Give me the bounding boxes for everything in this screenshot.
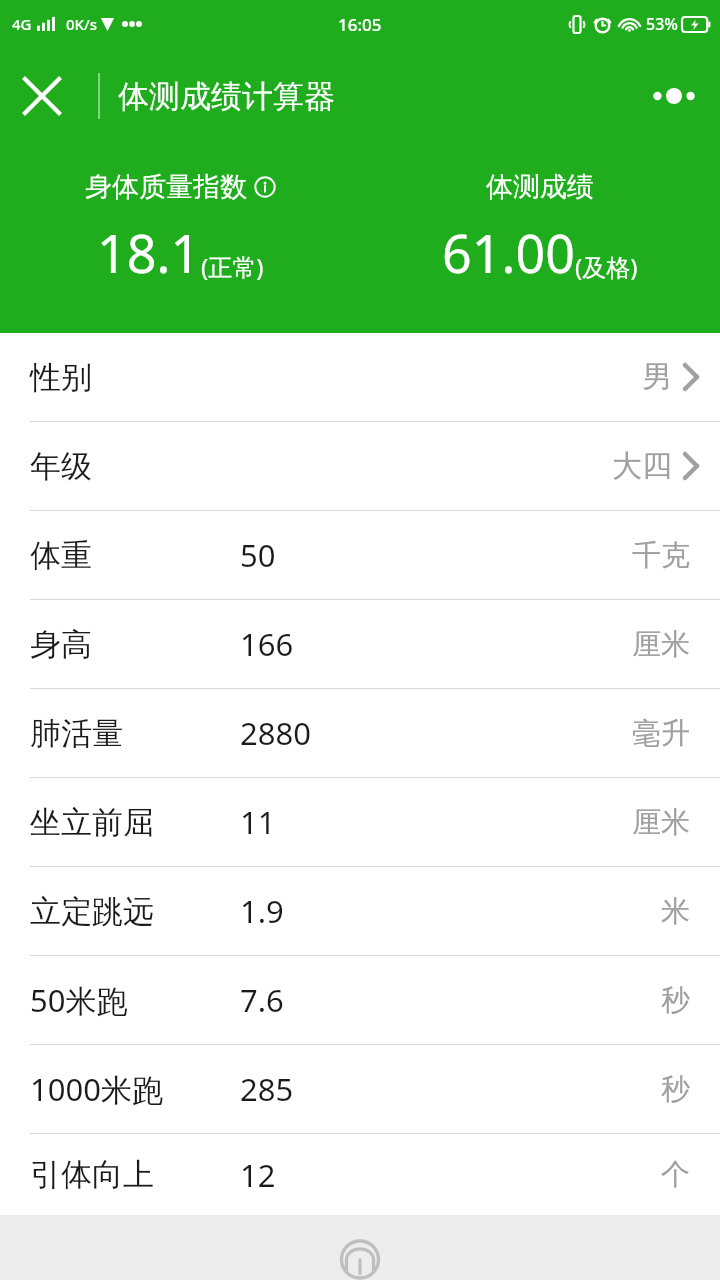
- staticText: 18.1: [97, 217, 201, 288]
- staticText: (及格): [575, 250, 638, 283]
- staticText: 米: [661, 893, 690, 930]
- staticText: 0K/s: [66, 14, 98, 34]
- staticText: 50: [240, 534, 276, 576]
- staticText: 285: [240, 1068, 294, 1110]
- staticText: 4G: [12, 14, 32, 34]
- staticText: 男: [642, 358, 672, 396]
- button[interactable]: 年级: [0, 422, 720, 510]
- staticText: 千克: [632, 537, 690, 574]
- staticText: 体测成绩计算器: [118, 77, 335, 116]
- staticText: 体测成绩: [486, 170, 594, 204]
- staticText: 引体向上: [30, 1155, 154, 1194]
- staticText: 1.9: [240, 890, 284, 932]
- staticText: 12: [240, 1154, 276, 1196]
- staticText: 11: [240, 801, 276, 843]
- staticText: 1000米跑: [30, 1068, 163, 1110]
- button[interactable]: 立定跳远: [0, 867, 720, 955]
- staticText: 2880: [240, 712, 311, 754]
- staticText: 16:05: [338, 13, 382, 36]
- button[interactable]: 坐立前屈: [0, 778, 720, 866]
- staticText: 性别: [30, 358, 92, 397]
- button[interactable]: 性别: [0, 333, 720, 421]
- staticText: 秒: [661, 982, 690, 1019]
- staticText: (正常): [201, 250, 264, 283]
- button[interactable]: 更多: [646, 68, 702, 124]
- staticText: 身体质量指数: [85, 170, 247, 204]
- button[interactable]: 身高: [0, 600, 720, 688]
- staticText: 7.6: [240, 979, 284, 1021]
- staticText: 身高: [30, 625, 92, 664]
- button[interactable]: 50米跑: [0, 956, 720, 1044]
- button[interactable]: 1000米跑: [0, 1045, 720, 1133]
- staticText: 50米跑: [30, 979, 128, 1021]
- staticText: 毫升: [632, 715, 690, 752]
- staticText: 166: [240, 623, 294, 665]
- staticText: 厘米: [632, 626, 690, 663]
- button[interactable]: 引体向上: [0, 1134, 720, 1215]
- staticText: 61.00: [442, 217, 575, 288]
- button[interactable]: 关闭: [14, 68, 70, 124]
- staticText: 立定跳远: [30, 892, 154, 931]
- button[interactable]: 肺活量: [0, 689, 720, 777]
- staticText: 坐立前屈: [30, 803, 154, 842]
- staticText: 年级: [30, 447, 92, 486]
- staticText: 秒: [661, 1071, 690, 1108]
- staticText: 个: [661, 1156, 690, 1193]
- staticText: 体重: [30, 536, 92, 575]
- staticText: 大四: [612, 447, 672, 485]
- staticText: 肺活量: [30, 714, 123, 753]
- staticText: 53%: [646, 13, 678, 35]
- button[interactable]: 体重: [0, 511, 720, 599]
- staticText: 厘米: [632, 804, 690, 841]
